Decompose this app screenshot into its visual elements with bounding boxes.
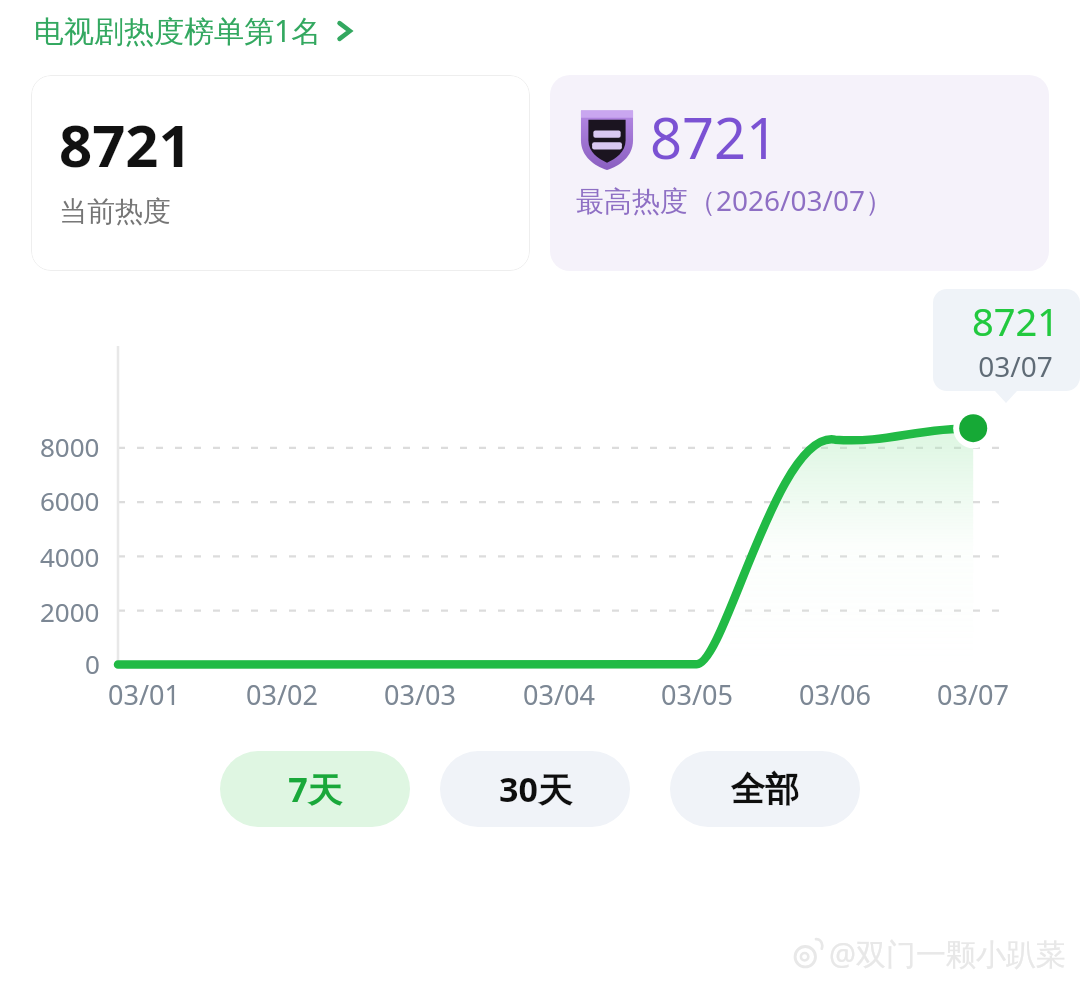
- staticText: 全部: [731, 768, 799, 811]
- staticText: 8721: [650, 99, 779, 175]
- staticText: 8000: [40, 429, 100, 464]
- other: Weibo: [791, 937, 825, 971]
- staticText: 03/05: [661, 676, 733, 713]
- staticText: 8721: [59, 105, 192, 184]
- staticText: 8721: [972, 295, 1059, 347]
- staticText: 03/06: [799, 676, 871, 713]
- staticText: 03/04: [523, 676, 595, 713]
- staticText: 03/02: [246, 676, 318, 713]
- button[interactable]: 30天: [440, 751, 630, 827]
- staticText: 4000: [40, 539, 100, 574]
- staticText: 电视剧热度榜单第1名: [34, 10, 322, 51]
- staticText: 6000: [40, 483, 100, 518]
- staticText: 最高热度（2026/03/07）: [576, 181, 893, 219]
- staticText: 0: [85, 646, 100, 681]
- button[interactable]: 8721: [31, 75, 530, 271]
- staticText: 当前热度: [59, 194, 171, 229]
- staticText: 03/03: [384, 676, 456, 713]
- staticText: 03/07: [937, 676, 1009, 713]
- button[interactable]: 电视剧热度榜单第1名: [34, 10, 356, 51]
- other: 佳片殿堂 badge: [576, 104, 638, 170]
- button[interactable]: 全部: [670, 751, 860, 827]
- button[interactable]: 7天: [220, 751, 410, 827]
- staticText: 2000: [40, 594, 100, 629]
- staticText: @双门一颗小趴菜: [829, 933, 1066, 974]
- staticText: 03/07: [978, 347, 1053, 385]
- staticText: 7天: [288, 766, 342, 812]
- staticText: 30天: [499, 766, 572, 812]
- staticText: 03/01: [108, 676, 180, 713]
- button[interactable]: 佳片殿堂 badge: [550, 75, 1049, 271]
